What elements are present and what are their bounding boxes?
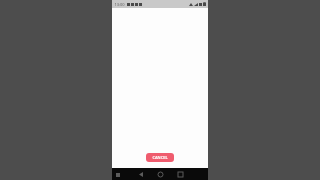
staticText: 13:00: [114, 2, 125, 7]
staticText: CANCEL: [152, 155, 168, 160]
button[interactable]: Home: [155, 169, 165, 179]
button[interactable]: CANCEL: [146, 153, 174, 162]
button[interactable]: Recent apps: [175, 169, 185, 179]
button[interactable]: Input method: [115, 172, 120, 177]
button[interactable]: Back: [136, 169, 146, 179]
